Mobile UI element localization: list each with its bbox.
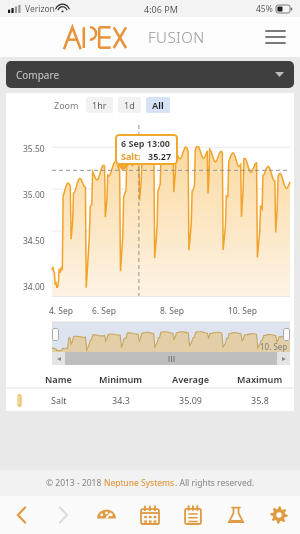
button[interactable]: Menu bbox=[260, 22, 290, 52]
staticText: Zoom bbox=[54, 99, 79, 111]
staticText: Minimum bbox=[99, 373, 143, 385]
staticText: Verizon bbox=[25, 3, 55, 15]
button[interactable]: Calendar bbox=[128, 496, 171, 534]
staticText: © 2013 - 2018 bbox=[46, 477, 104, 489]
staticText: 10. Sep bbox=[228, 305, 257, 317]
staticText: Name bbox=[45, 373, 72, 385]
staticText: Average bbox=[172, 373, 210, 385]
staticText: Compare bbox=[16, 68, 60, 82]
staticText: 35.00 bbox=[23, 189, 45, 201]
button[interactable]: Scroll left bbox=[52, 352, 65, 365]
button[interactable]: Log bbox=[171, 496, 214, 534]
button[interactable]: Tests bbox=[214, 496, 257, 534]
button[interactable]: 1hr bbox=[86, 97, 113, 113]
staticText: 1d bbox=[124, 99, 135, 111]
staticText: 6. Sep bbox=[92, 305, 117, 317]
button[interactable]: Dashboard bbox=[85, 496, 128, 534]
button[interactable]: Settings bbox=[257, 496, 300, 534]
staticText: FUSION bbox=[148, 27, 205, 47]
staticText: 1hr bbox=[92, 99, 107, 111]
staticText: 35.27 bbox=[148, 150, 172, 162]
staticText: Salt bbox=[51, 394, 67, 406]
staticText: Salt: bbox=[121, 150, 141, 162]
staticText: 8. Sep bbox=[160, 305, 185, 317]
button[interactable]: Scroll right bbox=[277, 352, 290, 365]
button[interactable]: Forward bbox=[42, 496, 85, 534]
staticText: 10. Sep bbox=[260, 341, 288, 352]
staticText: 34.00 bbox=[23, 281, 45, 293]
button[interactable]: Salt bbox=[6, 389, 294, 411]
staticText: 4. Sep bbox=[49, 305, 74, 317]
button[interactable]: 1d bbox=[118, 97, 141, 113]
staticText: Neptune Systems bbox=[104, 477, 175, 489]
staticText: 34.3 bbox=[112, 394, 130, 406]
staticText: Maximum bbox=[237, 373, 283, 385]
staticText: 35.8 bbox=[251, 394, 269, 406]
staticText: 34.50 bbox=[23, 235, 45, 247]
staticText: 35.09 bbox=[179, 394, 203, 406]
button[interactable]: Range handle bbox=[52, 328, 59, 341]
button[interactable] bbox=[65, 352, 277, 365]
staticText: . All rights reserved. bbox=[175, 477, 255, 489]
button[interactable]: Range handle bbox=[283, 328, 290, 341]
staticText: 45% bbox=[256, 3, 273, 15]
staticText: 4:06 PM bbox=[144, 3, 178, 15]
button[interactable]: Compare bbox=[6, 61, 294, 88]
button[interactable]: All bbox=[146, 97, 170, 113]
staticText: 35.50 bbox=[23, 143, 45, 155]
button[interactable]: Back bbox=[0, 496, 42, 534]
staticText: All bbox=[152, 99, 164, 111]
staticText: 6 Sep 13:00 bbox=[121, 137, 170, 149]
